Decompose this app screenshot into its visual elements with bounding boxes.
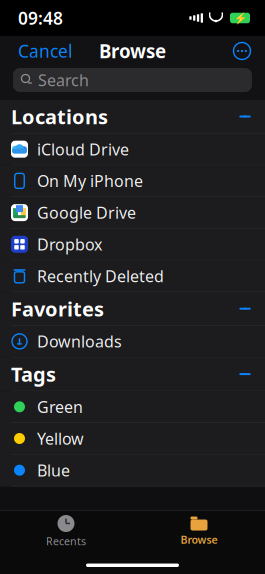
button[interactable]: Browse <box>159 513 239 551</box>
staticText: 09:48 <box>18 6 63 29</box>
staticText: Yellow <box>37 428 84 449</box>
staticText: Locations <box>11 103 108 130</box>
button[interactable]: Yellow <box>0 423 265 454</box>
staticText: Recents <box>46 534 86 548</box>
button[interactable]: Cancel <box>8 33 82 68</box>
button[interactable]: On My iPhone <box>0 165 265 196</box>
button[interactable]: Collapse Locations <box>233 104 257 128</box>
button[interactable]: Blue <box>0 455 265 486</box>
staticText: Green <box>37 396 83 417</box>
button[interactable]: More <box>227 37 257 65</box>
staticText: Tags <box>11 361 56 387</box>
button[interactable]: Google Drive <box>0 197 265 228</box>
staticText: Blue <box>37 460 70 481</box>
staticText: Cancel <box>18 39 72 62</box>
button[interactable]: Collapse Favorites <box>233 297 257 321</box>
staticText: Recently Deleted <box>37 265 164 287</box>
staticText: Dropbox <box>37 234 102 255</box>
button[interactable]: Recently Deleted <box>0 260 265 291</box>
staticText: Favorites <box>11 295 104 322</box>
button[interactable]: Search <box>13 68 252 92</box>
staticText: Downloads <box>37 331 122 352</box>
button[interactable]: iCloud Drive <box>0 134 265 165</box>
staticText: Browse <box>180 532 217 547</box>
button[interactable]: Collapse Tags <box>233 362 257 386</box>
button[interactable]: Recents <box>26 513 106 551</box>
staticText: Google Drive <box>37 202 136 223</box>
staticText: On My iPhone <box>37 170 143 191</box>
staticText: ⚡ <box>233 12 246 24</box>
button[interactable]: Downloads <box>0 326 265 357</box>
staticText: iCloud Drive <box>37 139 129 160</box>
button[interactable]: Dropbox <box>0 229 265 260</box>
button[interactable]: Green <box>0 391 265 422</box>
staticText: Browse <box>99 39 166 63</box>
staticText: Search <box>38 69 89 91</box>
